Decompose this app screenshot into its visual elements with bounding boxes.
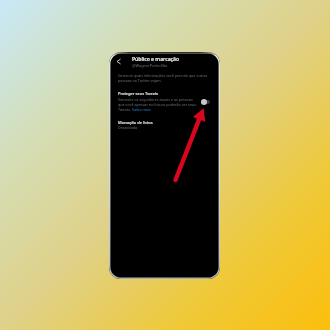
button[interactable]: Proteger seus Tweets toggle [201,99,210,105]
staticText: @WagnerPedroSão [132,63,168,68]
button[interactable]: Marcação de fotos [109,120,220,130]
staticText: Gerencie quais informações você permite … [118,73,208,83]
staticText: Marcação de fotos [118,120,153,125]
staticText: Somente os seguidores atuais e as pessoa… [118,97,197,112]
staticText: Desativada [118,125,138,130]
button[interactable]: Proteger seus Tweets [109,91,220,112]
staticText: Proteger seus Tweets [118,91,159,96]
button[interactable]: Back [114,57,123,66]
staticText: Público e marcação [132,56,180,63]
